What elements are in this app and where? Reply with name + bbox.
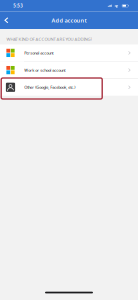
staticText: WHAT KIND OF ACCOUNT ARE YOU ADDING? [6,36,92,42]
button[interactable]: Other (Google, Facebook, etc.) [0,79,138,96]
button[interactable]: Back [0,11,15,29]
staticText: 5:53 [13,3,23,9]
button[interactable]: Personal account [0,44,138,61]
button[interactable]: Work or school account [0,62,138,78]
staticText: Add account [51,16,86,24]
staticText: Other (Google, Facebook, etc.) [24,85,75,90]
staticText: Personal account [24,50,53,56]
staticText: Work or school account [24,67,65,73]
